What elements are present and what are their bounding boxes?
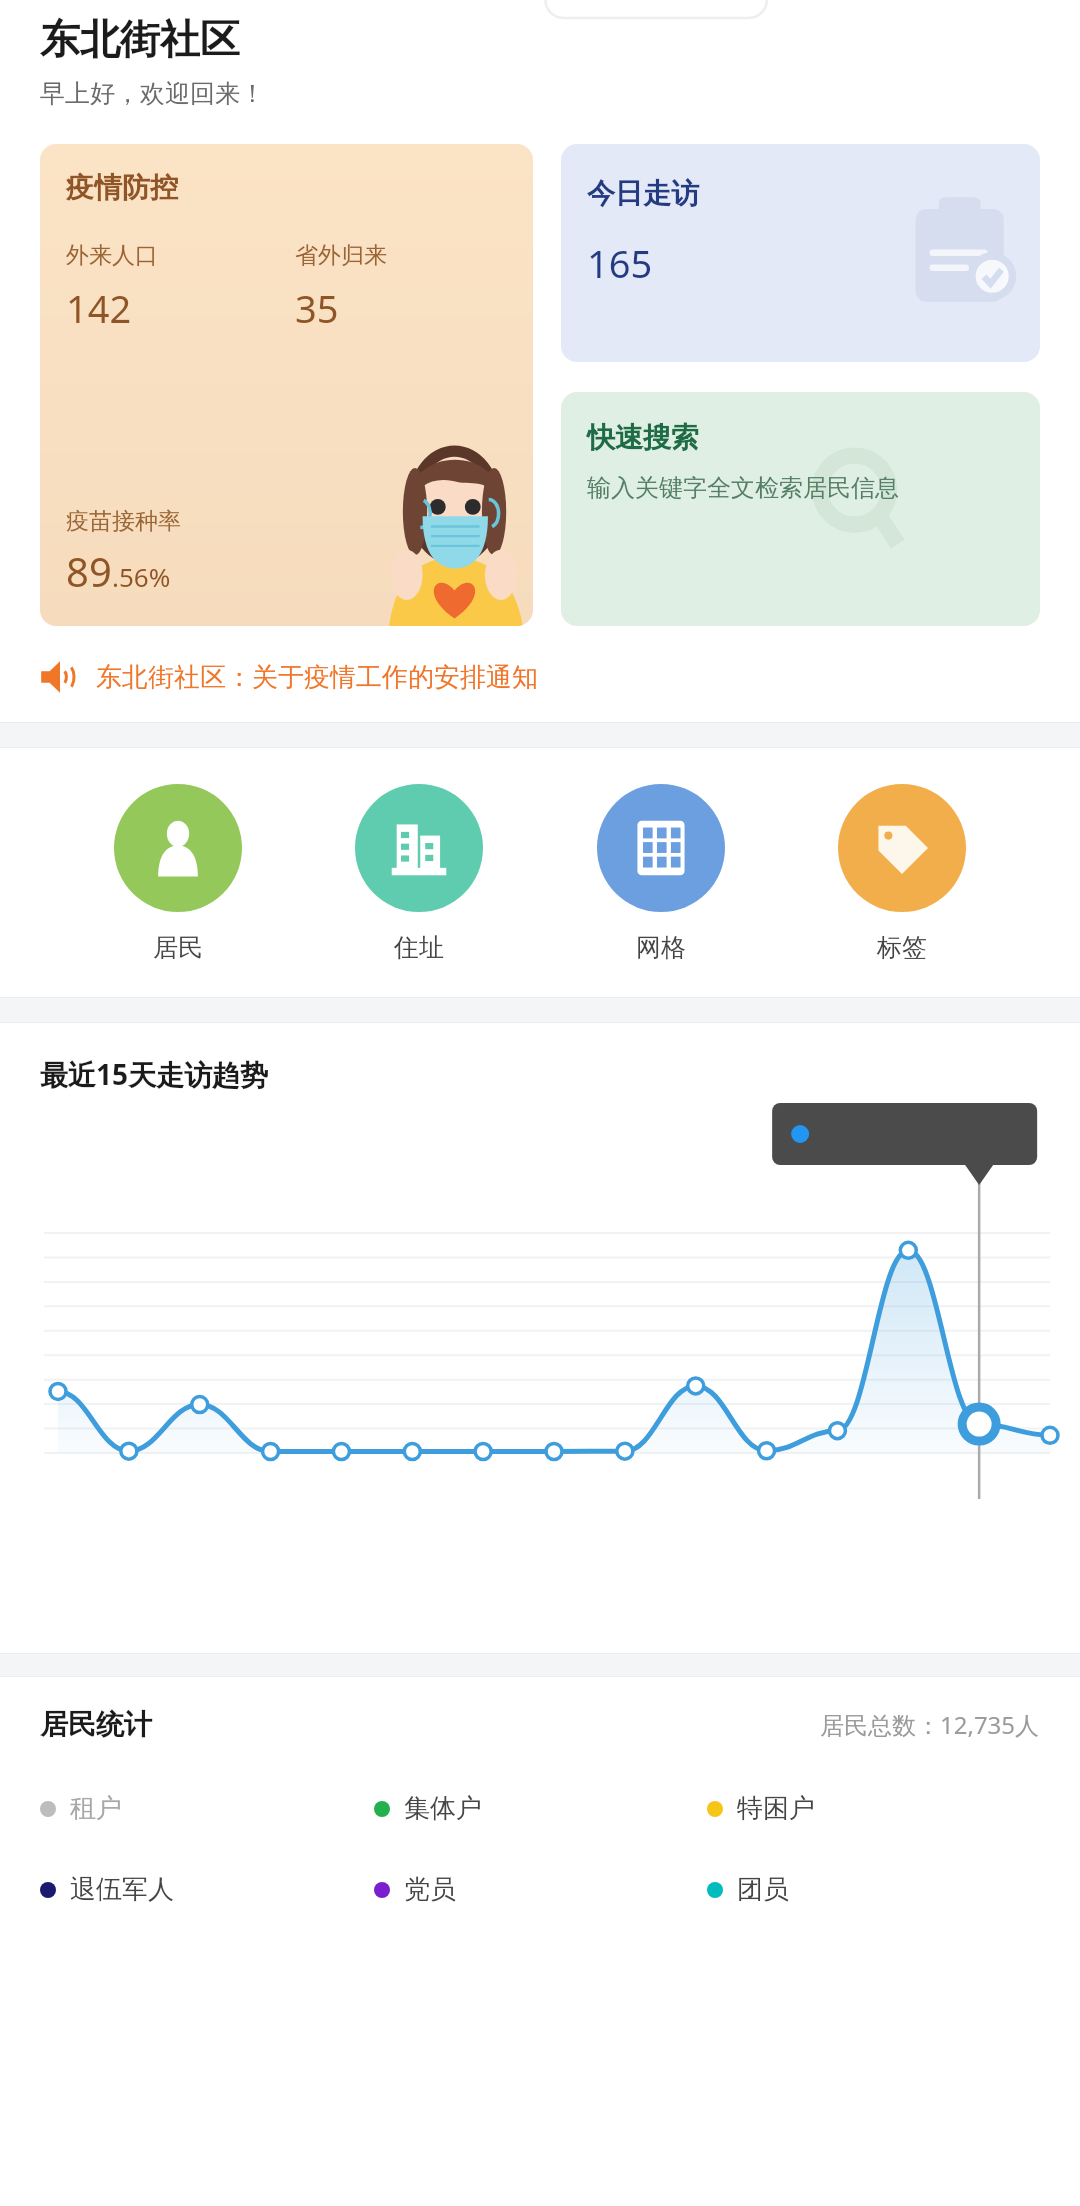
staticText: 居民统计 <box>40 1707 152 1742</box>
staticText: 输入关键字全文检索居民信息 <box>587 473 899 503</box>
button[interactable]: 居民 <box>114 784 242 963</box>
staticText: 外来人口 <box>66 241 158 270</box>
button[interactable]: 租户 <box>40 1792 374 1825</box>
staticText: 东北街社区 <box>40 14 240 64</box>
staticText: 特困户 <box>737 1792 815 1825</box>
staticText: 集体户 <box>404 1792 482 1825</box>
staticText: 142 <box>66 282 132 334</box>
staticText: 疫苗接种率 <box>66 507 181 536</box>
staticText: .56% <box>112 559 171 594</box>
staticText: 早上好，欢迎回来！ <box>40 78 265 108</box>
staticText: 退伍军人 <box>70 1873 174 1906</box>
staticText: 居民 <box>153 932 203 963</box>
staticText: 标签 <box>877 932 927 963</box>
button[interactable]: 快速搜索 <box>561 392 1040 626</box>
staticText: 居民总数：12,735人 <box>820 1708 1040 1741</box>
button[interactable]: 住址 <box>355 784 483 963</box>
staticText: 租户 <box>70 1792 122 1825</box>
staticText: 网格 <box>636 932 686 963</box>
staticText: 35 <box>295 282 339 334</box>
button[interactable]: 特困户 <box>707 1792 1040 1825</box>
staticText: 快速搜索 <box>587 420 699 455</box>
button[interactable]: 网格 <box>597 784 725 963</box>
staticText: 165 <box>587 237 653 289</box>
staticText: 疫情防控 <box>66 170 178 205</box>
staticText: 团员 <box>737 1873 789 1906</box>
staticText: 省外归来 <box>295 241 387 270</box>
staticText: 89 <box>66 544 112 598</box>
button[interactable]: 疫情防控 <box>40 144 533 626</box>
button[interactable]: 团员 <box>707 1873 1040 1906</box>
button[interactable]: 集体户 <box>374 1792 707 1825</box>
button[interactable]: 今日走访 <box>561 144 1040 362</box>
staticText: 住址 <box>394 932 444 963</box>
button[interactable]: 东北街社区：关于疫情工作的安排通知 <box>40 660 1050 694</box>
button[interactable]: 标签 <box>838 784 966 963</box>
staticText: 党员 <box>404 1873 456 1906</box>
button[interactable]: 退伍军人 <box>40 1873 374 1906</box>
staticText: 今日走访 <box>587 176 699 211</box>
staticText: 最近15天走访趋势 <box>40 1055 269 1093</box>
button[interactable]: 党员 <box>374 1873 707 1906</box>
staticText: 东北街社区：关于疫情工作的安排通知 <box>96 661 538 694</box>
